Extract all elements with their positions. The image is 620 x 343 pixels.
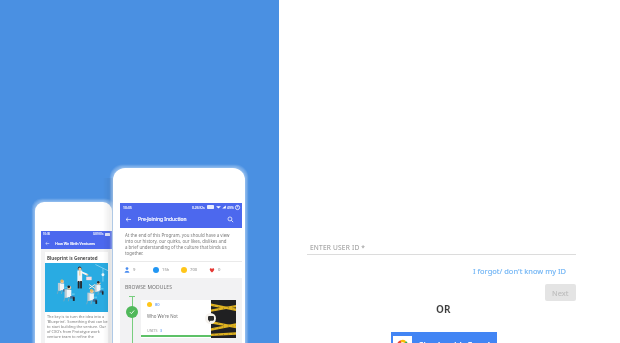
staticText: How We Birth Ventures [55, 241, 95, 246]
staticText: 0 [218, 267, 221, 273]
button[interactable]: Sign in with Google [391, 332, 497, 343]
staticText: 0.89 K/s [93, 232, 104, 236]
staticText: At the end of this Program, you should h… [125, 232, 230, 238]
button[interactable]: 80 [141, 300, 236, 338]
staticText: The key is to turn the idea into a [47, 314, 105, 319]
staticText: 15h [162, 267, 170, 273]
button[interactable]: Back [124, 215, 133, 224]
staticText: into our history, our quirks, our likes,… [125, 238, 227, 244]
staticText: 3 [160, 328, 163, 333]
staticText: together. [125, 250, 144, 256]
staticText: a brief understanding of the culture tha… [125, 244, 227, 250]
staticText: 10:36 [43, 232, 51, 236]
staticText: UNITS [147, 328, 158, 333]
staticText: OR [436, 302, 451, 316]
staticText: Next [552, 288, 569, 298]
staticText: ENTER USER ID * [310, 243, 366, 252]
staticText: 80 [155, 302, 160, 307]
staticText: 0.26 K/s [192, 205, 205, 210]
staticText: to start building the venture. Our t [47, 324, 108, 329]
button[interactable]: Back [44, 240, 50, 246]
staticText: 10:35 [123, 205, 132, 210]
staticText: Sign in with Google [419, 340, 495, 343]
button[interactable]: I forgot/ don't know my ID [473, 266, 566, 276]
button[interactable]: Search [226, 215, 235, 224]
staticText: venture team to refine the architec [47, 334, 108, 339]
button[interactable]: Comments [205, 313, 216, 324]
staticText: 49% [227, 205, 234, 210]
staticText: Blueprint is Generated [47, 255, 98, 261]
staticText: Who We're Not [147, 313, 178, 319]
staticText: BROWSE MODULES [125, 284, 172, 291]
staticText: of CXO's from Prototype work with [47, 329, 108, 334]
staticText: Pre-Joining Induction [138, 216, 187, 223]
staticText: 'Blueprint'. Something that can be [47, 319, 108, 324]
staticText: 700 [190, 267, 198, 273]
staticText: 9 [133, 267, 136, 273]
button[interactable]: Next [545, 284, 576, 301]
